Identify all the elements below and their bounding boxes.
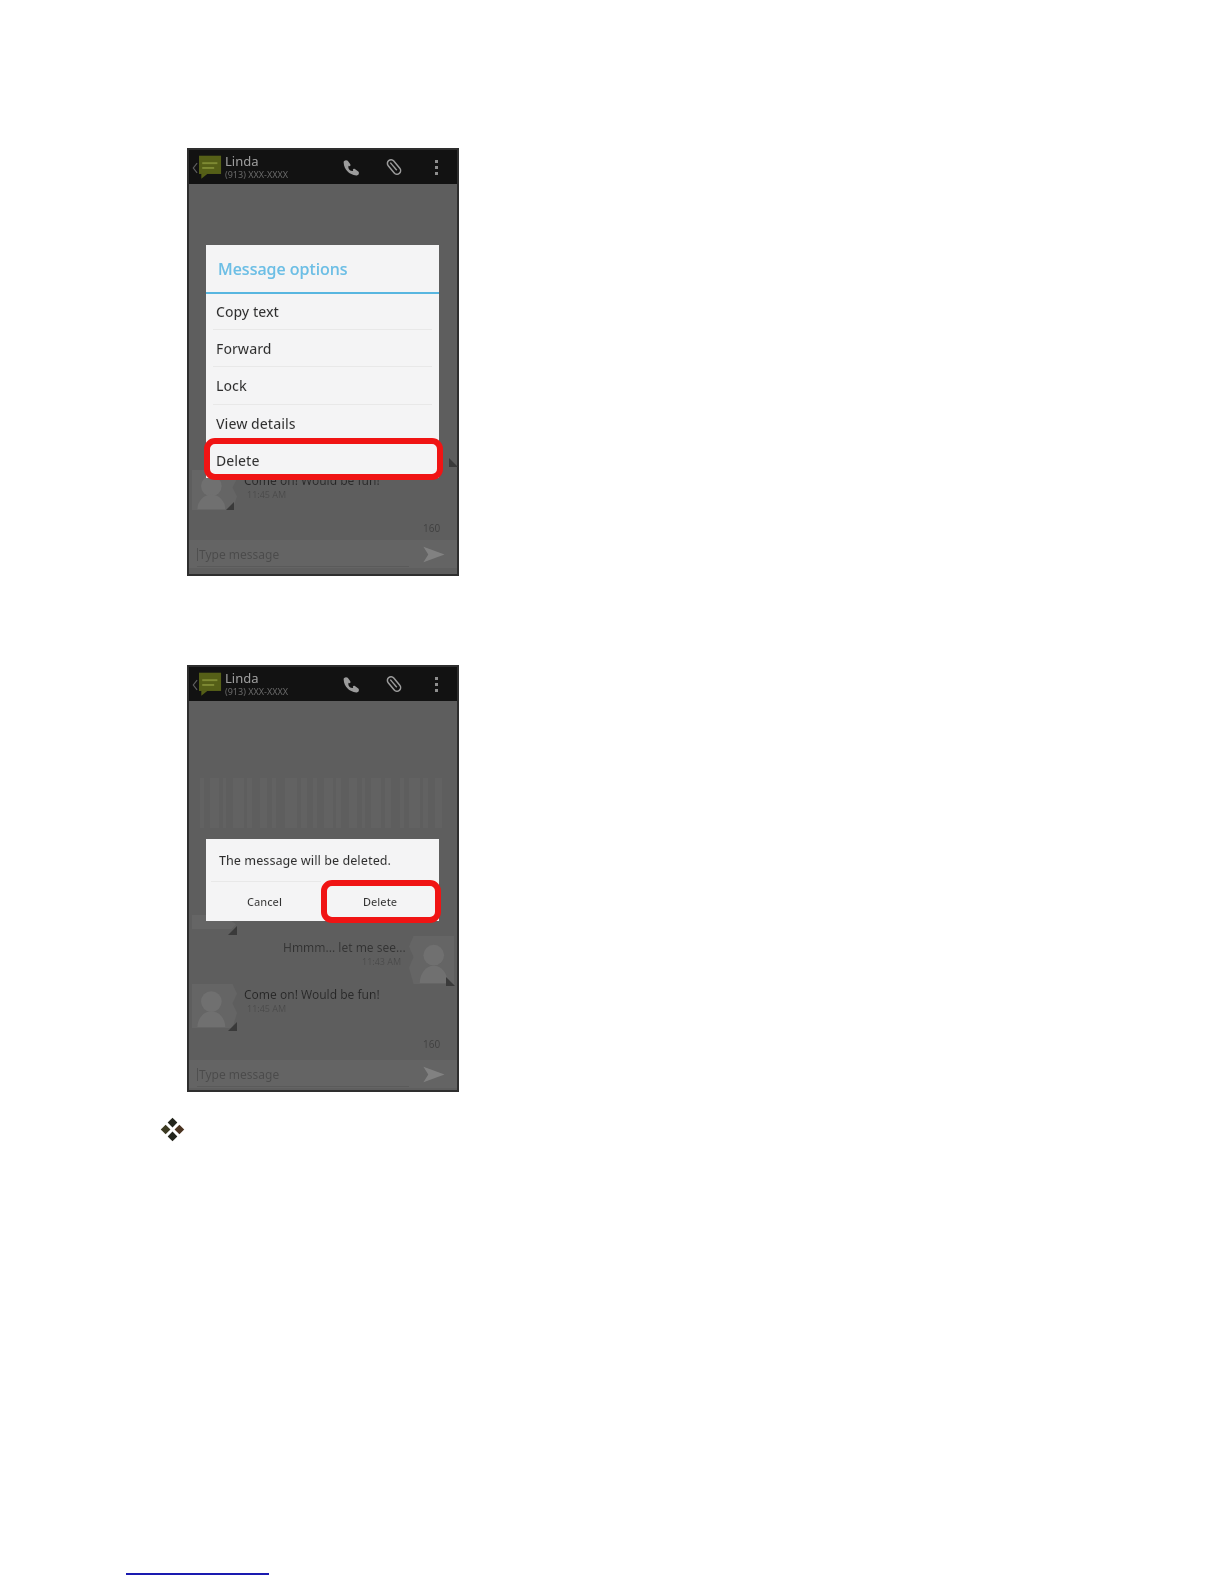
staticText: (913) XXX-XXXX	[225, 168, 289, 180]
button[interactable]: Copy text	[206, 294, 439, 329]
button[interactable]: Call	[339, 154, 363, 180]
staticText: 160	[423, 521, 441, 535]
staticText: The message will be deleted.	[219, 852, 392, 869]
button[interactable]: Send	[420, 542, 448, 566]
staticText: Message options	[218, 258, 348, 280]
staticText: 11:45 AM	[247, 1002, 287, 1014]
staticText: Cancel	[247, 894, 282, 909]
button[interactable]: Attach	[382, 154, 406, 180]
button[interactable]: More options	[427, 156, 445, 178]
staticText: Come on! Would be fun!	[244, 472, 380, 488]
button[interactable]: More options	[427, 673, 445, 695]
staticText: Type message	[199, 546, 280, 562]
staticText: Lock	[216, 376, 247, 395]
button[interactable]: Back to conversations	[189, 667, 309, 701]
button[interactable]: Cancel	[206, 882, 322, 921]
staticText: Forward	[216, 339, 272, 358]
staticText: View details	[216, 414, 296, 433]
staticText: Hmmm... let me see...	[283, 939, 406, 955]
button[interactable]: Delete	[322, 882, 439, 921]
button[interactable]: Attach	[382, 671, 406, 697]
staticText: Copy text	[216, 302, 279, 321]
staticText: Delete	[216, 451, 260, 470]
staticText: 11:43 AM	[362, 955, 402, 967]
button[interactable]: Call	[339, 671, 363, 697]
button[interactable]: Send	[420, 1062, 448, 1086]
staticText: Delete	[363, 894, 398, 909]
button[interactable]: Back to conversations	[189, 150, 309, 184]
button[interactable]: View details	[206, 405, 439, 442]
staticText: Come on! Would be fun!	[244, 986, 380, 1002]
staticText: Linda	[225, 152, 259, 170]
staticText: (913) XXX-XXXX	[225, 685, 289, 697]
staticText: 160	[423, 1037, 441, 1051]
staticText: Type message	[199, 1066, 280, 1082]
staticText: 11:45 AM	[247, 488, 287, 500]
staticText: Linda	[225, 669, 259, 687]
button[interactable]: Forward	[206, 330, 439, 366]
button[interactable]: Delete	[206, 443, 439, 478]
button[interactable]: Lock	[206, 367, 439, 404]
